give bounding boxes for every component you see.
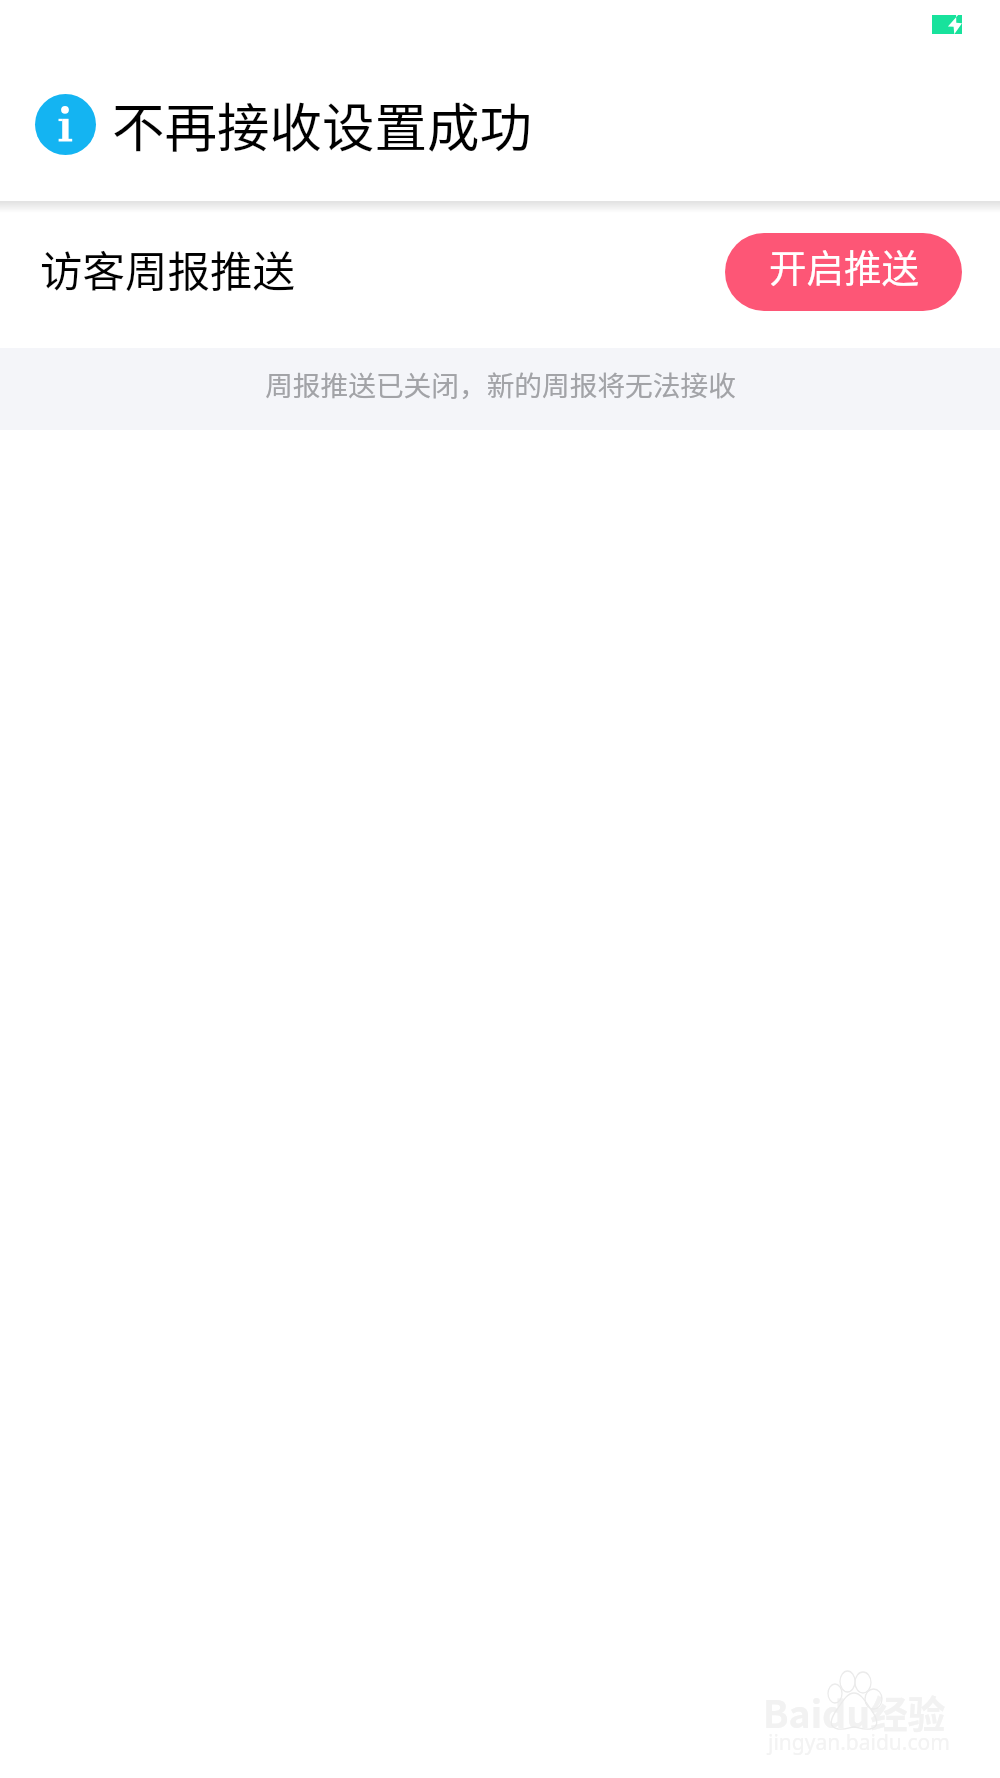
button[interactable]: 访客周报推送: [0, 210, 1000, 348]
other: Battery charging: [932, 15, 962, 34]
staticText: 不再接收设置成功: [112, 86, 533, 162]
staticText: Baidu经验: [763, 1684, 946, 1738]
staticText: jingyan.baidu.com: [768, 1728, 950, 1757]
button[interactable]: 开启推送: [725, 233, 962, 311]
staticText: 访客周报推送: [40, 238, 296, 300]
other: Information: [35, 94, 96, 155]
staticText: 周报推送已关闭，新的周报将无法接收: [265, 364, 736, 404]
staticText: 开启推送: [769, 238, 919, 292]
